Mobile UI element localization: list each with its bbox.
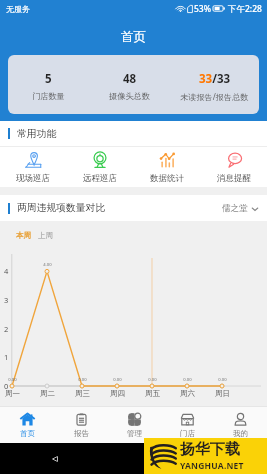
button[interactable]: 首页 (0, 407, 54, 443)
staticText: 数据统计 (150, 173, 184, 184)
staticText: 0.00 (183, 377, 192, 383)
button[interactable]: 儒之堂 (222, 203, 259, 214)
staticText: 两周违规项数量对比 (17, 202, 106, 214)
staticText: 周二 (40, 389, 55, 398)
staticText: 0.00 (218, 377, 227, 383)
staticText: 报告 (74, 429, 89, 438)
staticText: 门店 (180, 429, 195, 438)
button[interactable]: 现场巡店 (0, 147, 66, 187)
button[interactable]: 消息提醒 (200, 147, 267, 187)
staticText: 未读报告/报告总数 (180, 91, 249, 102)
staticText: 33/33 (199, 71, 231, 87)
staticText: 4.00 (43, 262, 52, 268)
staticText: 我的 (233, 429, 248, 438)
staticText: 0 (4, 381, 9, 391)
staticText: 上周 (38, 231, 53, 240)
staticText: 周六 (180, 389, 195, 398)
staticText: 周三 (75, 389, 90, 398)
staticText: 下午2:28 (228, 3, 262, 15)
button[interactable]: 数据统计 (133, 147, 200, 187)
staticText: 首页 (20, 429, 35, 438)
staticText: 周四 (110, 389, 125, 398)
staticText: 现场巡店 (16, 173, 50, 184)
staticText: 摄像头总数 (109, 91, 150, 101)
button[interactable]: 上周 (38, 231, 53, 240)
button[interactable]: 报告 (54, 407, 108, 443)
staticText: 首页 (121, 29, 146, 45)
staticText: 48 (123, 71, 137, 87)
staticText: 常用功能 (17, 128, 57, 140)
staticText: 儒之堂 (222, 203, 248, 214)
staticText: 2 (4, 324, 9, 334)
other: SIM card (187, 5, 193, 13)
staticText: 本周 (16, 231, 31, 240)
staticText: 无服务 (6, 4, 30, 14)
staticText: 1 (4, 352, 9, 362)
staticText: 0.00 (78, 377, 87, 383)
staticText: 周一 (5, 389, 20, 398)
staticText: 周日 (215, 389, 230, 398)
staticText: 0.00 (113, 377, 122, 383)
button[interactable]: 管理 (108, 407, 161, 443)
staticText: 4 (4, 266, 9, 276)
staticText: 0.00 (8, 377, 17, 383)
staticText: 门店数量 (32, 91, 65, 101)
staticText: 5 (45, 71, 52, 87)
staticText: 远程巡店 (83, 173, 117, 184)
staticText: 0.00 (148, 377, 157, 383)
other: Wifi (176, 5, 185, 13)
staticText: 53% (194, 3, 211, 15)
button[interactable]: 本周 (16, 231, 31, 240)
other: Battery (213, 5, 225, 12)
button[interactable]: 远程巡店 (66, 147, 133, 187)
staticText: YANGHUA.NET (180, 460, 244, 472)
button[interactable]: 我的 (214, 407, 267, 443)
button[interactable]: 门店 (161, 407, 214, 443)
staticText: 消息提醒 (217, 173, 251, 184)
staticText: 3 (4, 295, 9, 305)
staticText: 周五 (145, 389, 160, 398)
staticText: 扬华下载 (180, 440, 240, 459)
staticText: 管理 (127, 429, 142, 438)
